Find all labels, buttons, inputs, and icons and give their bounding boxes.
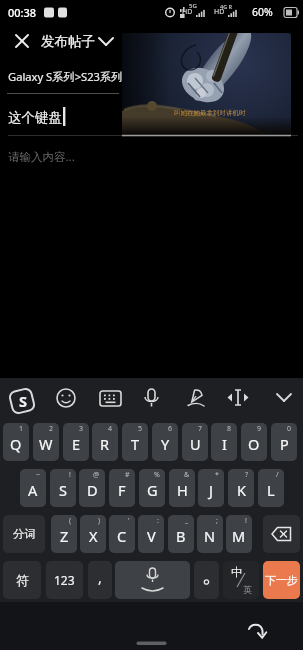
- staticText: R: [100, 434, 110, 454]
- button[interactable]: !: [226, 515, 252, 553]
- button[interactable]: 1: [3, 423, 29, 461]
- button[interactable]: [115, 561, 190, 599]
- button[interactable]: ;: [197, 515, 223, 553]
- staticText: ~: [36, 470, 41, 480]
- staticText: HD: [214, 7, 225, 17]
- button[interactable]: ,: [88, 561, 112, 599]
- staticText: 中: [231, 565, 243, 579]
- staticText: 1: [19, 424, 24, 434]
- button[interactable]: 3: [63, 423, 89, 461]
- staticText: N: [204, 526, 216, 546]
- staticText: G: [147, 480, 158, 500]
- button[interactable]: 123: [46, 561, 83, 599]
- staticText: %: [154, 470, 160, 480]
- button[interactable]: 中: [223, 561, 259, 599]
- staticText: 2: [49, 424, 54, 434]
- staticText: Q: [10, 434, 22, 454]
- button[interactable]: &: [169, 469, 195, 507]
- button[interactable]: 下一步: [263, 561, 300, 599]
- staticText: /: [276, 470, 279, 480]
- staticText: E: [72, 434, 81, 454]
- button[interactable]: #: [109, 469, 135, 507]
- button[interactable]: !: [50, 469, 76, 507]
- button[interactable]: 叫她在她最拿到对讲机时: [122, 33, 291, 137]
- button[interactable]: :: [138, 515, 164, 553]
- button[interactable]: [8, 27, 36, 55]
- staticText: _: [185, 516, 189, 526]
- button[interactable]: ~: [20, 469, 46, 507]
- button[interactable]: 6: [152, 423, 178, 461]
- staticText: L: [267, 480, 275, 500]
- staticText: Galaxy S系列>S23系列: [8, 69, 123, 84]
- staticText: T: [131, 434, 140, 454]
- button[interactable]: 符: [3, 561, 41, 599]
- button[interactable]: [0, 137, 303, 377]
- button[interactable]: [96, 386, 124, 412]
- staticText: HD: [182, 7, 193, 17]
- button[interactable]: [238, 610, 278, 646]
- staticText: 英: [243, 584, 252, 595]
- button[interactable]: [194, 561, 219, 599]
- button[interactable]: 7: [182, 423, 208, 461]
- staticText: !: [245, 516, 247, 526]
- staticText: 3: [79, 424, 84, 434]
- button[interactable]: [263, 515, 300, 553]
- button[interactable]: 0: [271, 423, 297, 461]
- button[interactable]: ): [80, 515, 106, 553]
- staticText: #: [125, 470, 130, 480]
- button[interactable]: ': [109, 515, 135, 553]
- button[interactable]: /: [258, 469, 284, 507]
- button[interactable]: 2: [33, 423, 59, 461]
- staticText: 5: [138, 424, 143, 434]
- staticText: ): [98, 516, 101, 526]
- button[interactable]: 分词: [3, 515, 45, 553]
- button[interactable]: [272, 386, 298, 412]
- staticText: 符: [16, 572, 29, 588]
- button[interactable]: 5: [122, 423, 148, 461]
- staticText: (: [69, 516, 72, 526]
- staticText: 分词: [13, 527, 36, 541]
- button[interactable]: %: [139, 469, 165, 507]
- button[interactable]: *: [198, 469, 224, 507]
- staticText: 发布帖子: [41, 33, 95, 50]
- staticText: Y: [161, 434, 170, 454]
- staticText: ,: [98, 568, 102, 587]
- staticText: 这个键盘: [8, 109, 62, 126]
- staticText: V: [147, 526, 156, 546]
- staticText: W: [39, 434, 53, 454]
- staticText: 60%: [252, 5, 273, 19]
- staticText: 4: [108, 424, 113, 434]
- button[interactable]: 8: [211, 423, 237, 461]
- staticText: 00:38: [8, 5, 37, 20]
- button[interactable]: [140, 386, 166, 412]
- staticText: ': [128, 516, 130, 526]
- staticText: S: [59, 480, 67, 500]
- button[interactable]: [38, 27, 116, 55]
- staticText: @: [93, 470, 100, 480]
- staticText: 下一步: [265, 573, 298, 587]
- staticText: X: [89, 526, 98, 546]
- button[interactable]: @: [79, 469, 105, 507]
- button[interactable]: (: [51, 515, 77, 553]
- staticText: C: [117, 526, 127, 546]
- button[interactable]: 4: [92, 423, 118, 461]
- staticText: 5G: [189, 2, 197, 10]
- button[interactable]: [52, 386, 80, 412]
- button[interactable]: 9: [241, 423, 267, 461]
- staticText: ?: [245, 470, 249, 480]
- button[interactable]: Galaxy S系列>S23系列: [8, 66, 158, 86]
- button[interactable]: ?: [228, 469, 254, 507]
- staticText: 8: [227, 424, 232, 434]
- staticText: K: [237, 480, 246, 500]
- button[interactable]: _: [168, 515, 194, 553]
- button[interactable]: [8, 386, 38, 416]
- staticText: :: [157, 516, 159, 526]
- button[interactable]: [226, 386, 252, 412]
- staticText: 请输入内容...: [8, 149, 75, 165]
- staticText: Z: [60, 526, 69, 546]
- staticText: I: [222, 434, 227, 454]
- button[interactable]: [184, 386, 210, 412]
- staticText: &: [184, 470, 190, 480]
- button[interactable]: [0, 98, 120, 135]
- staticText: *: [215, 470, 219, 480]
